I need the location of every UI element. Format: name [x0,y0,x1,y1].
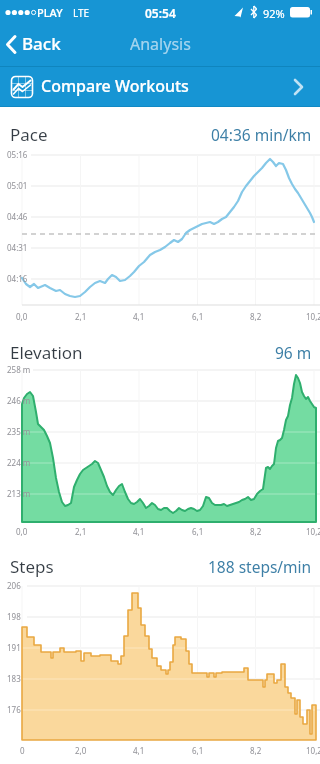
button[interactable]: Back [0,27,61,66]
staticText: 8,2 [250,745,262,756]
staticText: 4,1 [133,526,145,537]
staticText: Analysis [130,33,191,55]
staticText: Elevation [10,341,83,364]
button[interactable]: Compare Workouts [0,67,320,107]
staticText: 183 [7,673,21,684]
staticText: 176 [7,704,21,715]
staticText: 6,1 [192,745,204,756]
staticText: Back [22,32,61,55]
staticText: 04:16 [7,273,28,284]
staticText: 2,1 [75,311,87,322]
staticText: 4,1 [133,745,145,756]
staticText: 198 [7,611,21,622]
staticText: 2,1 [75,526,87,537]
staticText: 8,2 [250,526,262,537]
staticText: 10,2 [306,745,320,756]
staticText: 05:54 [145,5,176,21]
staticText: Pace [10,123,48,146]
staticText: 96 m [275,342,312,363]
staticText: LTE [73,6,90,20]
staticText: 0,0 [16,311,28,322]
staticText: 05:16 [7,149,28,160]
staticText: 10,2 [306,311,320,322]
staticText: 258 m [7,364,31,375]
staticText: 04:46 [7,211,28,222]
staticText: 6,1 [192,526,204,537]
staticText: 6,1 [192,311,204,322]
staticText: 04:31 [7,242,28,253]
staticText: 188 steps/min [208,556,312,577]
staticText: 0,0 [16,526,28,537]
staticText: 2,0 [75,745,87,756]
staticText: PLAY [37,5,63,20]
staticText: 235 m [7,426,31,437]
staticText: 92% [263,6,285,21]
staticText: 05:01 [7,180,28,191]
staticText: 213 m [7,488,31,499]
staticText: 8,2 [250,311,262,322]
staticText: 191 [7,642,21,653]
staticText: 224 m [7,457,31,468]
staticText: 246 m [7,395,31,406]
staticText: 4,1 [133,311,145,322]
staticText: Steps [10,555,54,578]
staticText: Compare Workouts [41,75,189,97]
staticText: 04:36 min/km [211,124,312,145]
staticText: 0 [20,745,25,756]
staticText: 206 [7,580,21,591]
staticText: 10,2 [306,526,320,537]
